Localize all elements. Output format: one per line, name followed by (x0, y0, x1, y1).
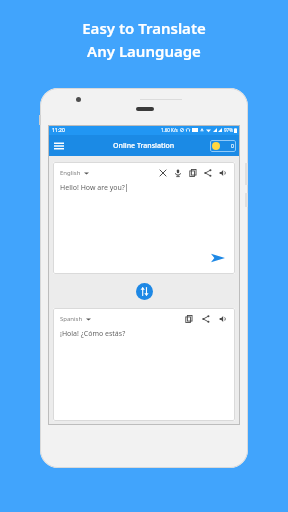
staticText: Easy to Translate (82, 18, 206, 38)
staticText: 11:20 (52, 127, 65, 134)
button[interactable]: Clear (158, 168, 168, 178)
button[interactable]: Speak (218, 314, 228, 324)
staticText: English (60, 169, 81, 177)
staticText: ¡Hola! ¿Cómo estás? (60, 329, 126, 339)
button[interactable]: Share (201, 314, 211, 324)
staticText: Hello! How are you? (60, 183, 125, 193)
button[interactable]: Coins (210, 140, 236, 152)
button[interactable]: Share (203, 168, 213, 178)
button[interactable]: Translate (208, 248, 228, 268)
button[interactable]: English (60, 169, 93, 177)
button[interactable]: Voice input (173, 168, 183, 178)
staticText: Online Translation (113, 141, 175, 151)
staticText: 97% (224, 127, 233, 133)
button[interactable]: Swap languages (136, 283, 153, 300)
button[interactable]: Speak (218, 168, 228, 178)
button[interactable]: Copy (188, 168, 198, 178)
staticText: Any Launguage (87, 41, 201, 61)
button[interactable]: Copy (184, 314, 194, 324)
staticText: 1.60 K/s (161, 127, 178, 133)
button[interactable]: Spanish (60, 315, 95, 323)
staticText: 0 (231, 143, 234, 150)
button[interactable]: Menu (52, 139, 66, 153)
staticText: Spanish (60, 315, 83, 323)
